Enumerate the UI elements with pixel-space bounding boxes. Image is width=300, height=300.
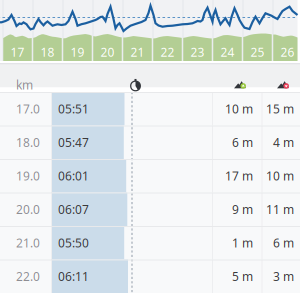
staticText: 9 m	[232, 201, 253, 217]
staticText: 15 m	[266, 101, 294, 117]
staticText: 6 m	[273, 235, 294, 251]
staticText: 6 m	[232, 134, 253, 150]
staticText: 05:50	[58, 235, 89, 251]
staticText: 17.0	[16, 101, 40, 117]
staticText: 23	[190, 44, 204, 60]
staticText: 19	[70, 44, 84, 60]
staticText: 20	[100, 44, 114, 60]
staticText: 05:51	[58, 101, 89, 117]
staticText: 26	[280, 44, 294, 60]
staticText: 19.0	[16, 168, 40, 184]
staticText: 21	[130, 44, 144, 60]
staticText: 06:01	[58, 168, 89, 184]
staticText: 4 m	[273, 134, 294, 150]
staticText: 05:47	[58, 134, 89, 150]
staticText: 22	[160, 44, 174, 60]
staticText: km	[16, 77, 33, 93]
staticText: 24	[220, 44, 234, 60]
staticText: 10 m	[266, 168, 294, 184]
staticText: 3 m	[273, 268, 294, 284]
staticText: 21.0	[16, 235, 40, 251]
staticText: 06:11	[58, 268, 89, 284]
staticText: 17	[10, 44, 24, 60]
staticText: 11 m	[266, 201, 294, 217]
staticText: 17 m	[225, 168, 253, 184]
staticText: 06:07	[58, 201, 89, 217]
staticText: 25	[250, 44, 264, 60]
staticText: 22.0	[16, 268, 40, 284]
staticText: 1 m	[232, 235, 253, 251]
staticText: 5 m	[232, 268, 253, 284]
staticText: 10 m	[225, 101, 253, 117]
staticText: 18.0	[16, 134, 40, 150]
staticText: 20.0	[16, 201, 40, 217]
staticText: 18	[40, 44, 54, 60]
